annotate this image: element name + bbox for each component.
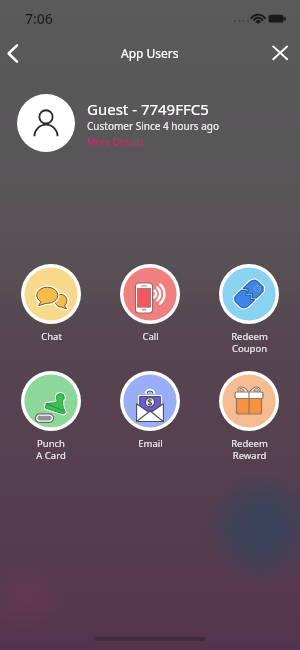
staticText: Redeem Reward — [231, 437, 268, 461]
staticText: App Users — [121, 45, 179, 61]
staticText: Customer Since 4 hours ago — [87, 119, 220, 133]
button[interactable]: Punch A Card — [9, 371, 93, 461]
staticText: 7:06 — [25, 9, 53, 28]
button[interactable]: Call — [108, 264, 192, 343]
staticText: Email — [138, 437, 163, 450]
button[interactable]: Email — [108, 371, 192, 450]
button[interactable]: Redeem Coupon — [207, 264, 291, 354]
button[interactable]: More Details — [87, 135, 144, 148]
staticText: Punch A Card — [36, 437, 66, 461]
button[interactable]: Close — [270, 38, 300, 68]
button[interactable]: Chat — [9, 264, 93, 343]
staticText: More Details — [87, 135, 144, 148]
button[interactable]: Back — [1, 38, 31, 68]
staticText: Chat — [41, 330, 62, 343]
button[interactable]: Redeem Reward — [207, 371, 291, 461]
staticText: Call — [142, 330, 159, 343]
staticText: Redeem Coupon — [231, 330, 268, 354]
staticText: Guest - 7749FFC5 — [87, 99, 209, 119]
